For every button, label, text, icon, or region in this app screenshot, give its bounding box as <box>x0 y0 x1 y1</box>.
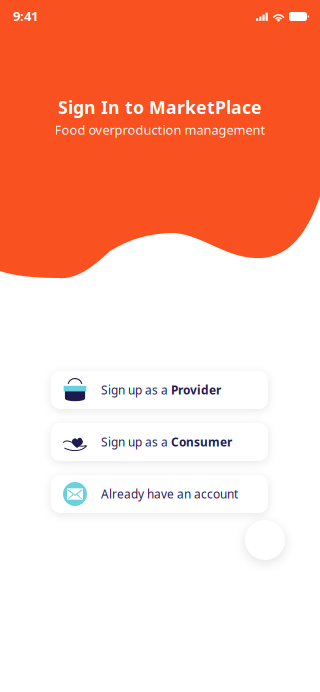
staticText: Sign up as a <box>101 434 171 450</box>
staticText: Consumer <box>171 434 232 450</box>
staticText: Already have an account <box>101 486 238 502</box>
staticText: Food overproduction management <box>54 121 265 139</box>
staticText: 9:41 <box>13 7 38 25</box>
button[interactable]: Sign up as a <box>51 423 268 461</box>
staticText: Sign In to MarketPlace <box>58 95 262 119</box>
button[interactable]: Already have an account <box>51 475 268 513</box>
button[interactable]: Sign up as a <box>51 371 268 409</box>
staticText: Sign up as a <box>101 382 171 398</box>
staticText: Provider <box>171 382 221 398</box>
